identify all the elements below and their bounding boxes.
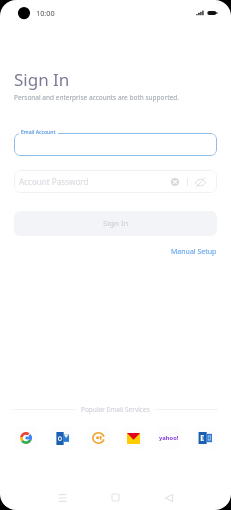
button[interactable]: Mail	[86, 426, 110, 450]
button[interactable]: Outlook	[50, 426, 74, 450]
button[interactable]: Google	[14, 426, 38, 450]
staticText: Popular Email Services	[81, 405, 150, 414]
button[interactable]: Exchange	[193, 426, 217, 450]
staticText: Personal and enterprise accounts are bot…	[14, 93, 179, 102]
staticText: Manual Setup	[171, 247, 217, 257]
button[interactable]: Clear	[168, 175, 182, 189]
staticText: yahoo!	[159, 434, 179, 442]
staticText: Account Password	[19, 176, 89, 187]
button[interactable]: Yandex Mail	[121, 426, 145, 450]
button[interactable]: Manual Setup	[171, 245, 231, 259]
button[interactable]	[14, 133, 217, 156]
button[interactable]: Sign In	[14, 211, 217, 236]
button[interactable]: Show password	[193, 175, 207, 189]
staticText: Sign In	[103, 218, 129, 229]
button[interactable]: Home	[104, 486, 127, 509]
button[interactable]: Recent apps	[51, 486, 74, 509]
button[interactable]: Back	[157, 486, 180, 509]
button[interactable]: Yahoo Mail	[157, 426, 181, 450]
staticText: Sign In	[14, 68, 70, 91]
button[interactable]: Account Password	[14, 170, 217, 193]
staticText: Email Account	[21, 129, 56, 136]
staticText: 10:00	[36, 8, 55, 18]
